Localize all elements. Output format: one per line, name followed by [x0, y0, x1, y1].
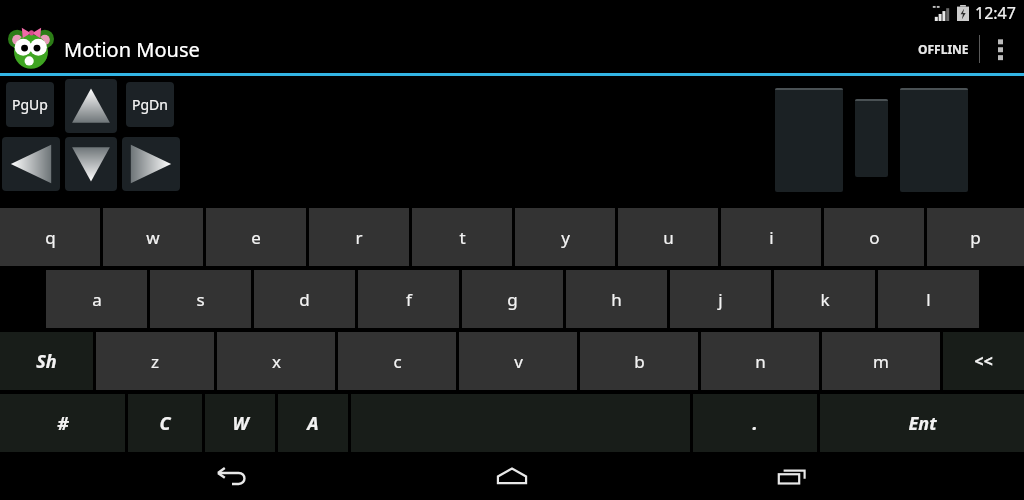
- staticText: .: [752, 411, 758, 436]
- button[interactable]: s: [150, 270, 251, 328]
- button[interactable]: j: [670, 270, 771, 328]
- button[interactable]: u: [618, 208, 718, 266]
- button[interactable]: o: [824, 208, 924, 266]
- staticText: <<: [974, 350, 993, 372]
- button[interactable]: v: [459, 332, 577, 390]
- staticText: c: [393, 350, 402, 373]
- staticText: b: [634, 350, 645, 373]
- button[interactable]: t: [412, 208, 512, 266]
- button[interactable]: c: [338, 332, 456, 390]
- button[interactable]: Left: [2, 137, 60, 191]
- button[interactable]: Sh: [0, 332, 93, 390]
- staticText: l: [926, 288, 931, 311]
- staticText: z: [151, 350, 159, 373]
- staticText: i: [769, 226, 774, 249]
- button[interactable]: OFFLINE: [908, 25, 979, 73]
- staticText: n: [755, 350, 766, 373]
- button[interactable]: Back: [184, 452, 280, 500]
- staticText: v: [514, 350, 523, 373]
- button[interactable]: i: [721, 208, 821, 266]
- button[interactable]: Recent apps: [744, 452, 840, 500]
- staticText: a: [92, 288, 102, 311]
- button[interactable]: f: [358, 270, 459, 328]
- staticText: w: [146, 226, 160, 249]
- button[interactable]: q: [0, 208, 100, 266]
- staticText: f: [406, 288, 412, 311]
- button[interactable]: PgUp: [6, 82, 54, 127]
- button[interactable]: Middle mouse button: [855, 99, 888, 177]
- staticText: Motion Mouse: [64, 36, 200, 63]
- staticText: u: [663, 226, 674, 249]
- staticText: s: [196, 288, 205, 311]
- button[interactable]: e: [206, 208, 306, 266]
- button[interactable]: b: [580, 332, 698, 390]
- staticText: x: [272, 350, 281, 373]
- button[interactable]: W: [205, 394, 275, 452]
- button[interactable]: <<: [943, 332, 1024, 390]
- staticText: e: [251, 226, 261, 249]
- button[interactable]: x: [217, 332, 335, 390]
- button[interactable]: m: [822, 332, 940, 390]
- staticText: t: [459, 226, 466, 249]
- button[interactable]: Right: [122, 137, 180, 191]
- button[interactable]: k: [774, 270, 875, 328]
- staticText: r: [355, 226, 363, 249]
- staticText: y: [561, 226, 570, 249]
- button[interactable]: y: [515, 208, 615, 266]
- button[interactable]: A: [278, 394, 348, 452]
- staticText: k: [820, 288, 830, 311]
- button[interactable]: Left mouse button: [775, 88, 843, 192]
- staticText: A: [307, 411, 319, 436]
- staticText: g: [507, 288, 518, 311]
- button[interactable]: g: [462, 270, 563, 328]
- staticText: Sh: [36, 349, 57, 374]
- staticText: p: [970, 226, 981, 249]
- staticText: OFFLINE: [918, 41, 969, 57]
- staticText: j: [718, 288, 723, 311]
- button[interactable]: C: [128, 394, 202, 452]
- button[interactable]: #: [0, 394, 125, 452]
- staticText: #: [57, 411, 69, 436]
- button[interactable]: l: [878, 270, 979, 328]
- button[interactable]: w: [103, 208, 203, 266]
- staticText: d: [299, 288, 310, 311]
- button[interactable]: Right mouse button: [900, 88, 968, 192]
- button[interactable]: .: [693, 394, 817, 452]
- staticText: q: [45, 226, 56, 249]
- button[interactable]: Up: [65, 79, 117, 133]
- staticText: 12:47: [975, 2, 1016, 24]
- button[interactable]: n: [701, 332, 819, 390]
- button[interactable]: p: [927, 208, 1024, 266]
- staticText: m: [873, 350, 889, 373]
- staticText: PgDn: [132, 95, 168, 114]
- staticText: o: [869, 226, 880, 249]
- button[interactable]: Down: [65, 137, 117, 191]
- button[interactable]: a: [46, 270, 147, 328]
- button[interactable]: More options: [980, 25, 1020, 73]
- button[interactable]: d: [254, 270, 355, 328]
- button[interactable]: Home: [464, 452, 560, 500]
- button[interactable]: h: [566, 270, 667, 328]
- staticText: W: [232, 411, 249, 436]
- staticText: h: [611, 288, 622, 311]
- button[interactable]: r: [309, 208, 409, 266]
- staticText: PgUp: [12, 95, 48, 114]
- button[interactable]: Ent: [820, 394, 1024, 452]
- staticText: C: [159, 411, 171, 436]
- button[interactable]: PgDn: [126, 82, 174, 127]
- button[interactable]: z: [96, 332, 214, 390]
- staticText: Ent: [908, 411, 937, 436]
